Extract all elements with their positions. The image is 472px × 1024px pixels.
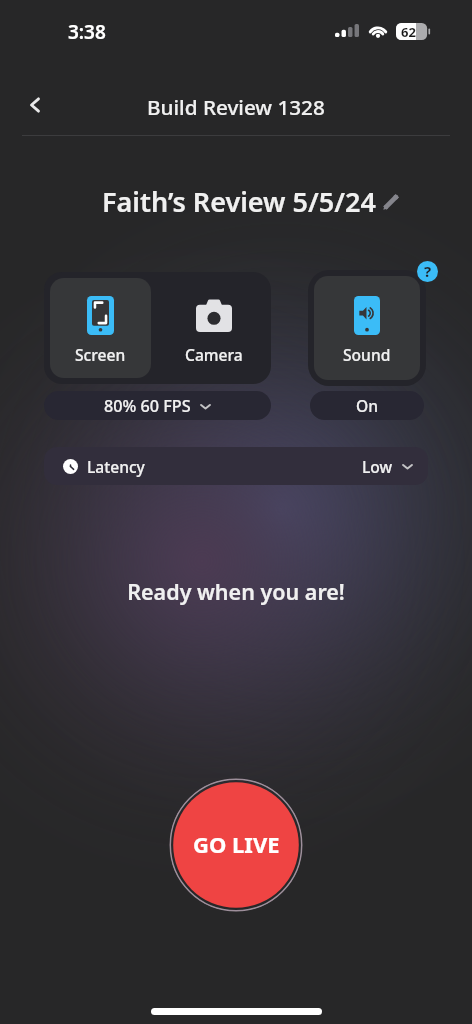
button[interactable]: Edit — [375, 186, 406, 217]
staticText: Faith’s Review 5/5/24 — [102, 183, 376, 220]
button[interactable]: Screen — [50, 278, 151, 378]
button[interactable]: Help — [417, 261, 438, 282]
staticText: Ready when you are! — [0, 577, 472, 606]
button[interactable]: Sound — [314, 276, 420, 380]
button[interactable]: Latency — [44, 447, 428, 485]
staticText: ? — [424, 261, 432, 281]
staticText: On — [356, 395, 379, 416]
button[interactable]: Back — [14, 84, 56, 126]
staticText: 62 — [401, 23, 416, 40]
staticText: GO LIVE — [193, 829, 280, 859]
button[interactable]: On — [310, 391, 424, 420]
staticText: Screen — [75, 344, 126, 365]
staticText: 80% 60 FPS — [104, 395, 191, 417]
staticText: Latency — [87, 456, 145, 477]
staticText: Camera — [185, 344, 243, 365]
button[interactable]: GO LIVE — [169, 778, 303, 912]
staticText: Build Review 1328 — [147, 93, 325, 121]
button[interactable]: Camera — [163, 278, 265, 378]
staticText: 3:38 — [68, 19, 106, 45]
staticText: Low — [362, 456, 393, 477]
button[interactable]: 80% 60 FPS — [44, 391, 271, 420]
staticText: Sound — [343, 344, 391, 365]
